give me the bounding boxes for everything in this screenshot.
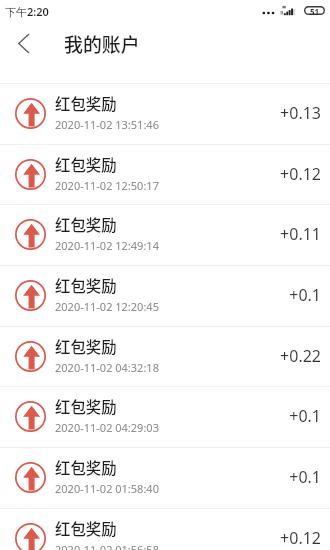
staticText: 2020-11-02 04:32:18 — [55, 360, 159, 375]
button[interactable]: Back — [0, 22, 48, 64]
staticText: +0.13 — [280, 102, 321, 124]
staticText: 红包奖励 — [55, 92, 117, 114]
staticText: +0.1 — [289, 405, 321, 427]
staticText: 2020-11-02 12:20:45 — [55, 299, 159, 314]
staticText: 红包奖励 — [55, 456, 117, 478]
button[interactable]: 红包奖励 — [0, 84, 330, 144]
staticText: 红包奖励 — [55, 274, 117, 296]
staticText: 我的账户 — [64, 30, 140, 57]
staticText: 红包奖励 — [55, 153, 117, 175]
button[interactable]: 红包奖励 — [0, 327, 330, 387]
staticText: 2020-11-02 01:58:40 — [55, 481, 159, 496]
staticText: 下午2:20 — [5, 4, 49, 19]
staticText: 2020-11-02 12:50:17 — [55, 178, 159, 193]
staticText: 红包奖励 — [55, 395, 117, 417]
staticText: +0.1 — [289, 466, 321, 488]
staticText: 51 — [310, 6, 320, 15]
staticText: 红包奖励 — [55, 335, 117, 357]
staticText: +0.12 — [280, 527, 321, 549]
staticText: +0.11 — [280, 223, 321, 245]
staticText: +0.12 — [280, 163, 321, 185]
staticText: 2020-11-02 12:49:14 — [55, 238, 159, 253]
staticText: 红包奖励 — [55, 517, 117, 539]
button[interactable]: 红包奖励 — [0, 145, 330, 205]
button[interactable]: 红包奖励 — [0, 448, 330, 508]
button[interactable]: 红包奖励 — [0, 387, 330, 447]
staticText: +0.22 — [280, 345, 321, 367]
staticText: 2020-11-02 01:56:58 — [55, 542, 159, 550]
button[interactable]: 红包奖励 — [0, 509, 330, 550]
staticText: 2020-11-02 13:51:46 — [55, 117, 159, 132]
button[interactable]: 红包奖励 — [0, 266, 330, 326]
button[interactable]: 红包奖励 — [0, 205, 330, 265]
staticText: 红包奖励 — [55, 213, 117, 235]
staticText: +0.1 — [289, 284, 321, 306]
staticText: 2020-11-02 04:29:03 — [55, 420, 159, 435]
